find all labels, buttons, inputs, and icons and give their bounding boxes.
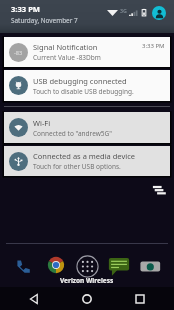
- button[interactable]: Messages: [108, 255, 130, 277]
- staticText: 3:33 PM: [11, 4, 41, 14]
- staticText: -83: [14, 49, 23, 57]
- staticText: Touch to disable USB debugging.: [33, 87, 134, 96]
- staticText: 3G: [120, 7, 127, 14]
- staticText: Touch for other USB options.: [33, 162, 121, 171]
- staticText: 3:33 PM: [142, 42, 165, 50]
- button[interactable]: Recents: [132, 291, 148, 307]
- button[interactable]: Chrome: [46, 255, 66, 275]
- button[interactable]: Phone: [13, 256, 33, 276]
- staticText: Connected to "andrew5G": [33, 129, 112, 138]
- button[interactable]: Connected as a media device: [4, 146, 170, 176]
- button[interactable]: User profile: [152, 6, 166, 20]
- staticText: Saturday, November 7: [11, 16, 78, 25]
- button[interactable]: Apps: [76, 255, 99, 278]
- staticText: Current Value -83Dbm: [33, 53, 101, 62]
- button[interactable]: Clear all notifications: [152, 182, 167, 197]
- button[interactable]: -83: [4, 37, 170, 67]
- staticText: Connected as a media device: [33, 151, 135, 161]
- button[interactable]: Wi-Fi: [4, 112, 170, 143]
- button[interactable]: Back: [26, 291, 42, 307]
- staticText: Signal Notification: [33, 42, 98, 52]
- button[interactable]: Home: [79, 291, 95, 307]
- button[interactable]: Camera: [140, 256, 161, 277]
- staticText: Wi-Fi: [33, 118, 51, 128]
- button[interactable]: USB debugging connected: [4, 70, 170, 101]
- staticText: USB debugging connected: [33, 76, 127, 86]
- staticText: Verizon Wireless: [60, 276, 114, 285]
